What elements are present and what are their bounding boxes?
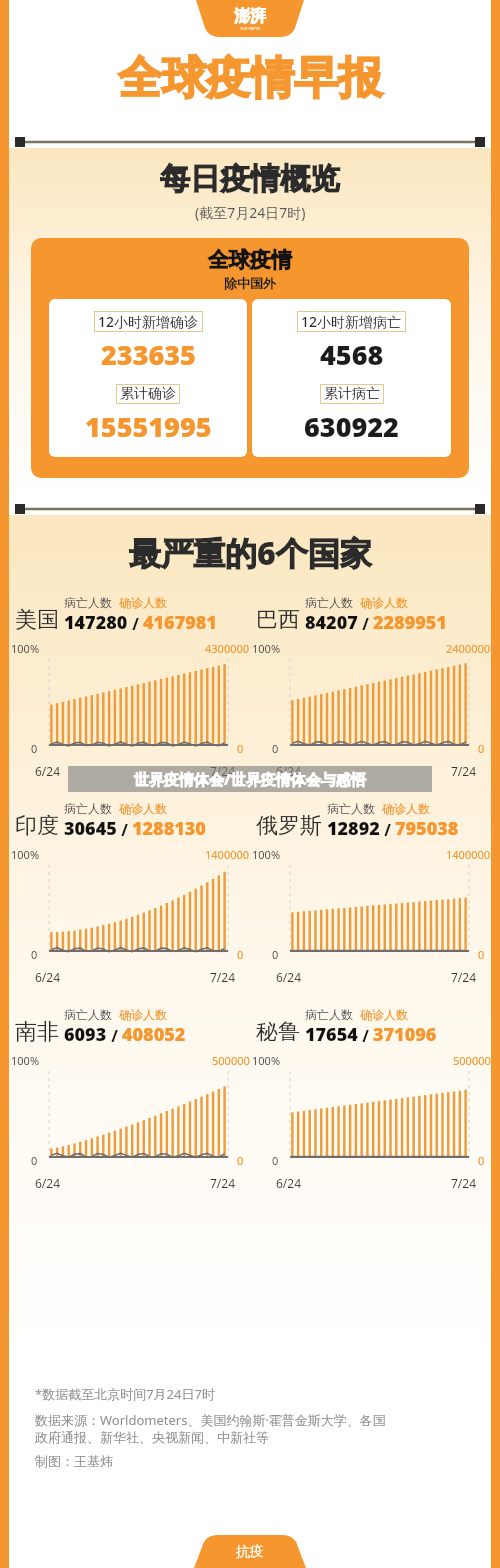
- staticText: 0: [237, 947, 244, 962]
- staticText: 印度: [15, 812, 59, 840]
- staticText: 病亡人数: [64, 595, 112, 610]
- staticText: 1400000: [446, 847, 491, 862]
- staticText: 确诊人数: [119, 801, 167, 816]
- staticText: 美国: [15, 606, 59, 634]
- staticText: 2289951: [373, 610, 447, 635]
- button[interactable]: 秘鲁: [256, 1007, 491, 1047]
- staticText: 病亡人数: [64, 1007, 112, 1022]
- staticText: 0: [272, 1153, 279, 1168]
- staticText: 0: [237, 1153, 244, 1168]
- staticText: 确诊人数: [360, 595, 408, 610]
- staticText: 全球疫情早报: [118, 51, 382, 106]
- staticText: 全球疫情: [208, 247, 292, 273]
- staticText: 84207: [305, 610, 358, 635]
- staticText: /: [358, 613, 373, 635]
- staticText: 100%: [252, 1053, 281, 1068]
- staticText: 巴西: [256, 606, 300, 634]
- staticText: 100%: [11, 641, 40, 656]
- staticText: 制图：王基炜: [35, 1453, 113, 1469]
- staticText: 7/24: [451, 1175, 477, 1191]
- staticText: 0: [272, 741, 279, 756]
- button[interactable]: The Paper logo: [196, 0, 304, 37]
- staticText: 0: [272, 947, 279, 962]
- staticText: 500000: [453, 1053, 491, 1068]
- staticText: 4300000: [205, 641, 250, 656]
- staticText: /: [128, 613, 143, 635]
- staticText: 病亡人数: [327, 801, 375, 816]
- staticText: 7/24: [210, 969, 236, 985]
- staticText: 累计确诊: [120, 385, 176, 403]
- button[interactable]: 南非: [15, 1007, 250, 1047]
- staticText: 累计病亡: [324, 385, 380, 403]
- button[interactable]: 俄罗斯: [256, 801, 491, 841]
- staticText: 确诊人数: [119, 1007, 167, 1022]
- staticText: 233635: [101, 336, 196, 373]
- staticText: (截至7月24日7时): [195, 203, 306, 222]
- staticText: 7/24: [451, 763, 477, 779]
- button[interactable]: 12小时新增确诊: [49, 299, 247, 457]
- staticText: 6/24: [276, 969, 302, 985]
- staticText: 7/24: [210, 763, 236, 779]
- staticText: 4167981: [143, 610, 217, 635]
- staticText: 30645: [64, 816, 117, 841]
- staticText: *数据截至北京时间7月24日7时: [35, 1385, 215, 1403]
- staticText: 12小时新增病亡: [301, 312, 402, 331]
- staticText: 1288130: [132, 816, 206, 841]
- staticText: 每日疫情概览: [160, 160, 340, 198]
- staticText: 政府通报、新华社、央视新闻、中新社等: [35, 1429, 269, 1445]
- staticText: 澎湃: [234, 6, 266, 26]
- staticText: 病亡人数: [64, 801, 112, 816]
- staticText: 147280: [64, 610, 128, 635]
- staticText: 病亡人数: [305, 595, 353, 610]
- staticText: 100%: [252, 847, 281, 862]
- staticText: 408052: [122, 1022, 186, 1047]
- button[interactable]: 全球疫情: [31, 238, 469, 478]
- staticText: 0: [237, 741, 244, 756]
- staticText: 7/24: [451, 969, 477, 985]
- staticText: 6/24: [35, 969, 61, 985]
- staticText: 4568: [320, 336, 384, 373]
- staticText: 2400000: [446, 641, 491, 656]
- staticText: 除中国外: [224, 275, 276, 291]
- staticText: 0: [31, 1153, 38, 1168]
- staticText: 12小时新增确诊: [98, 312, 199, 331]
- staticText: 12892: [327, 816, 380, 841]
- staticText: THE PAPER: [240, 26, 261, 31]
- button[interactable]: 12小时新增病亡: [252, 299, 451, 457]
- staticText: /: [107, 1025, 122, 1047]
- staticText: 371096: [373, 1022, 437, 1047]
- staticText: 病亡人数: [305, 1007, 353, 1022]
- staticText: 6/24: [35, 1175, 61, 1191]
- staticText: 1400000: [205, 847, 250, 862]
- staticText: 100%: [11, 1053, 40, 1068]
- staticText: /: [117, 819, 132, 841]
- staticText: 500000: [212, 1053, 250, 1068]
- button[interactable]: 抗疫: [194, 1535, 306, 1568]
- button[interactable]: 巴西: [256, 595, 491, 635]
- staticText: 俄罗斯: [256, 812, 322, 840]
- staticText: /: [358, 1025, 373, 1047]
- staticText: 6/24: [276, 763, 302, 779]
- staticText: 6093: [64, 1022, 107, 1047]
- staticText: 17654: [305, 1022, 358, 1047]
- staticText: 15551995: [85, 408, 212, 445]
- staticText: 0: [31, 947, 38, 962]
- button[interactable]: 美国: [15, 595, 250, 635]
- staticText: /: [380, 819, 395, 841]
- staticText: 7/24: [210, 1175, 236, 1191]
- staticText: 秘鲁: [256, 1018, 300, 1046]
- staticText: 世界疫情体会/世界疫情体会与感悟: [134, 769, 366, 789]
- staticText: 0: [478, 947, 485, 962]
- staticText: 630922: [304, 408, 399, 445]
- staticText: 100%: [11, 847, 40, 862]
- staticText: 确诊人数: [119, 595, 167, 610]
- staticText: 6/24: [276, 1175, 302, 1191]
- staticText: 0: [31, 741, 38, 756]
- staticText: 0: [478, 741, 485, 756]
- staticText: 确诊人数: [360, 1007, 408, 1022]
- staticText: 数据来源：Worldometers、美国约翰斯·霍普金斯大学、各国: [35, 1411, 386, 1429]
- button[interactable]: 印度: [15, 801, 250, 841]
- staticText: 南非: [15, 1018, 59, 1046]
- staticText: 确诊人数: [382, 801, 430, 816]
- staticText: 最严重的6个国家: [129, 531, 372, 575]
